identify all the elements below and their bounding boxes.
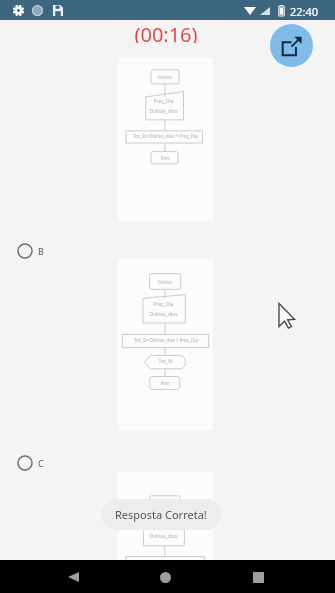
button[interactable]: Início <box>118 472 213 593</box>
staticText: Diárias_dias <box>149 108 178 115</box>
staticText: Tot_St=Diárias_dias * Preç_Dia <box>133 559 198 565</box>
button[interactable]: Back <box>62 566 84 588</box>
staticText: Início <box>158 278 172 285</box>
button[interactable]: (00:16) <box>109 21 222 43</box>
staticText: Tot_St <box>158 358 173 365</box>
staticText: Diárias_dias <box>149 311 178 318</box>
button[interactable]: B <box>16 239 45 263</box>
staticText: Fim <box>160 379 170 386</box>
staticText: 22:40 <box>290 4 319 19</box>
staticText: Fim <box>160 154 170 161</box>
staticText: Diárias_dias <box>149 533 178 540</box>
button[interactable]: Home <box>154 566 176 588</box>
staticText: Tot_St=Diárias_dias / Preç_Dia <box>134 337 198 343</box>
button[interactable]: C <box>16 451 45 475</box>
staticText: Resposta Correta! <box>115 507 207 522</box>
staticText: B <box>38 245 44 257</box>
button[interactable]: Início <box>118 259 213 430</box>
staticText: Preç_Dia <box>153 98 174 105</box>
button[interactable]: Open in external window <box>270 24 313 67</box>
button[interactable]: Recent apps <box>247 566 269 588</box>
staticText: C <box>38 457 44 469</box>
staticText: Tot_St=Diárias_dias * Preç_Dia <box>133 133 198 139</box>
staticText: Preç_Dia <box>153 524 174 531</box>
staticText: Preç_Dia <box>153 301 174 308</box>
staticText: Início <box>158 73 172 80</box>
button[interactable]: Início <box>118 58 213 221</box>
staticText: (00:16) <box>134 21 198 43</box>
